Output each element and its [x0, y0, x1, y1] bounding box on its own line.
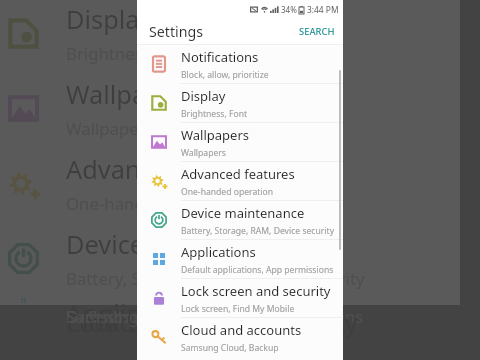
staticText: Wallpapers — [181, 126, 250, 144]
staticText: 3:44 PM — [307, 4, 339, 15]
staticText: Device maintenance — [181, 204, 305, 222]
staticText: Display — [66, 2, 153, 37]
button[interactable]: Applications — [137, 240, 343, 278]
other: Wi-Fi — [261, 6, 268, 13]
button[interactable]: Display — [137, 84, 343, 122]
staticText: Default applications, App permissions — [181, 264, 334, 276]
button[interactable]: Lock screen and security — [137, 279, 343, 317]
button[interactable]: Notifications — [137, 45, 343, 83]
staticText: Lock screen and security — [181, 282, 331, 300]
staticText: Device maintenance — [66, 227, 307, 262]
staticText: Brightness, Font — [66, 42, 195, 65]
staticText: One-handed operation — [181, 186, 274, 198]
button[interactable]: Display — [0, 0, 460, 70]
button[interactable]: SEARCH — [291, 20, 343, 43]
staticText: Battery, Storage, RAM, Device security — [181, 225, 335, 237]
staticText: Wallpapers — [66, 77, 199, 112]
staticText: Samsung Cloud, Backup — [181, 342, 279, 354]
other: SD card — [250, 6, 258, 13]
button[interactable]: Advanced features — [0, 146, 460, 220]
button[interactable]: Wallpapers — [137, 123, 343, 161]
staticText: SEARCH — [299, 25, 335, 38]
staticText: Applications — [181, 243, 256, 261]
staticText: Cloud and accounts — [181, 321, 302, 339]
staticText: 34% — [281, 4, 297, 15]
staticText: Battery, Storage, RAM, Device security — [66, 267, 365, 290]
other: Battery — [299, 6, 304, 14]
staticText: Advanced features — [66, 152, 288, 187]
other: Signal — [270, 6, 279, 13]
staticText: Wallpapers — [181, 147, 226, 159]
staticText: Block, allow, prioritize — [181, 69, 269, 81]
staticText: Display — [181, 87, 226, 105]
button[interactable]: Device maintenance — [0, 221, 460, 295]
staticText: One-handed operation — [66, 192, 246, 215]
staticText: Notifications — [181, 48, 259, 66]
staticText: Wallpapers — [66, 117, 154, 140]
button[interactable]: Wallpapers — [0, 71, 460, 145]
staticText: Brightness, Font — [181, 108, 248, 120]
button[interactable]: Applications — [0, 296, 460, 305]
button[interactable]: Cloud and accounts — [137, 318, 343, 356]
staticText: Applications — [66, 296, 212, 305]
staticText: Advanced features — [181, 165, 295, 183]
button[interactable]: Advanced features — [137, 162, 343, 200]
staticText: Settings — [149, 22, 203, 41]
staticText: Lock screen, Find My Mobile — [181, 303, 295, 315]
button[interactable]: Device maintenance — [137, 201, 343, 239]
